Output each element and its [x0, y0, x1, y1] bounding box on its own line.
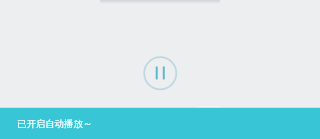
staticText: 已开启自动播放～ [17, 118, 93, 130]
button[interactable]: 已开启自动播放～ [0, 108, 320, 139]
button[interactable]: Pause [144, 57, 176, 89]
